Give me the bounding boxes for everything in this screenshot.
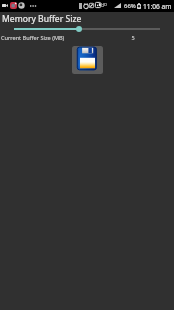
button[interactable]: Save	[72, 46, 103, 74]
button[interactable]	[0, 23, 174, 35]
staticText: 5	[127, 34, 139, 42]
staticText: HD	[101, 2, 108, 8]
staticText: Memory Buffer Size	[2, 13, 82, 25]
staticText: Current Buffer Size (MB)	[1, 34, 65, 42]
staticText: 11:06 am	[143, 2, 172, 11]
staticText: 66%	[124, 2, 136, 10]
